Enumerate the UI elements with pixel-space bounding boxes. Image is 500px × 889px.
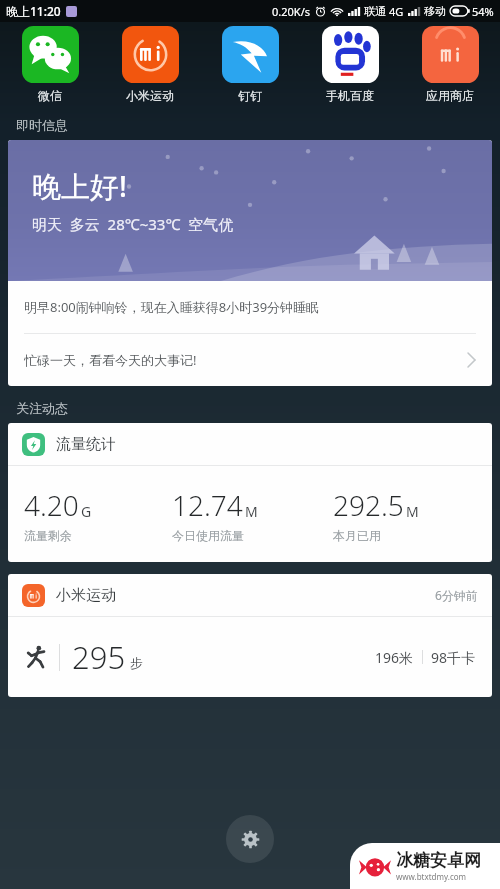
button[interactable]: 忙碌一天，看看今天的大事记! bbox=[8, 334, 492, 386]
staticText: 微信 bbox=[38, 88, 62, 103]
staticText: 明早8:00闹钟响铃，现在入睡获得8小时39分钟睡眠 bbox=[24, 298, 320, 316]
staticText: 晚上11:20 bbox=[6, 3, 61, 19]
staticText: 明天 多云 28℃~33℃ 空气优 bbox=[32, 214, 234, 234]
staticText: 4.20 bbox=[24, 486, 79, 524]
staticText: M bbox=[406, 502, 419, 521]
staticText: 12.74 bbox=[172, 486, 243, 524]
staticText: 晚上好! bbox=[32, 166, 127, 206]
staticText: 6分钟前 bbox=[435, 587, 478, 603]
staticText: 本月已用 bbox=[333, 528, 381, 543]
staticText: 今日使用流量 bbox=[172, 528, 244, 543]
staticText: 54% bbox=[472, 4, 494, 19]
button[interactable]: 小米运动 bbox=[8, 574, 492, 616]
staticText: 196米 bbox=[375, 648, 414, 667]
staticText: 292.5 bbox=[333, 486, 404, 524]
button[interactable]: 钉钉 bbox=[200, 23, 300, 107]
staticText: 流量剩余 bbox=[24, 528, 72, 543]
staticText: 0.20K/s bbox=[272, 4, 310, 19]
button[interactable]: 流量统计 bbox=[8, 423, 492, 465]
staticText: 小米运动 bbox=[56, 586, 116, 605]
staticText: 即时信息 bbox=[16, 117, 68, 133]
staticText: 钉钉 bbox=[238, 88, 262, 103]
staticText: 步 bbox=[130, 655, 143, 671]
button[interactable]: 微信 bbox=[0, 23, 100, 107]
staticText: 流量统计 bbox=[56, 435, 116, 454]
button[interactable]: 应用商店 bbox=[400, 23, 500, 107]
staticText: 冰糖安卓网 bbox=[396, 850, 481, 871]
staticText: G bbox=[81, 502, 92, 521]
button[interactable]: 295 bbox=[8, 617, 492, 697]
button[interactable]: 手机百度 bbox=[300, 23, 400, 107]
staticText: 手机百度 bbox=[326, 88, 374, 103]
staticText: 应用商店 bbox=[426, 88, 474, 103]
staticText: 忙碌一天，看看今天的大事记! bbox=[24, 351, 197, 369]
staticText: 4G bbox=[389, 4, 404, 19]
staticText: 295 bbox=[72, 636, 126, 678]
staticText: 小米运动 bbox=[126, 88, 174, 103]
staticText: 98千卡 bbox=[431, 648, 476, 667]
staticText: 移动 bbox=[424, 4, 446, 18]
staticText: 关注动态 bbox=[16, 400, 68, 416]
button[interactable]: 4.20 bbox=[8, 466, 492, 562]
button[interactable]: 小米运动 bbox=[100, 23, 200, 107]
staticText: www.btxtdmy.com bbox=[396, 871, 467, 882]
button[interactable]: 晚上好! bbox=[8, 140, 492, 281]
staticText: 联通 bbox=[364, 4, 386, 18]
staticText: M bbox=[245, 502, 258, 521]
button[interactable]: 明早8:00闹钟响铃，现在入睡获得8小时39分钟睡眠 bbox=[8, 281, 492, 333]
other: 查看大事记 bbox=[467, 352, 476, 368]
button[interactable]: 设置 bbox=[226, 815, 274, 863]
